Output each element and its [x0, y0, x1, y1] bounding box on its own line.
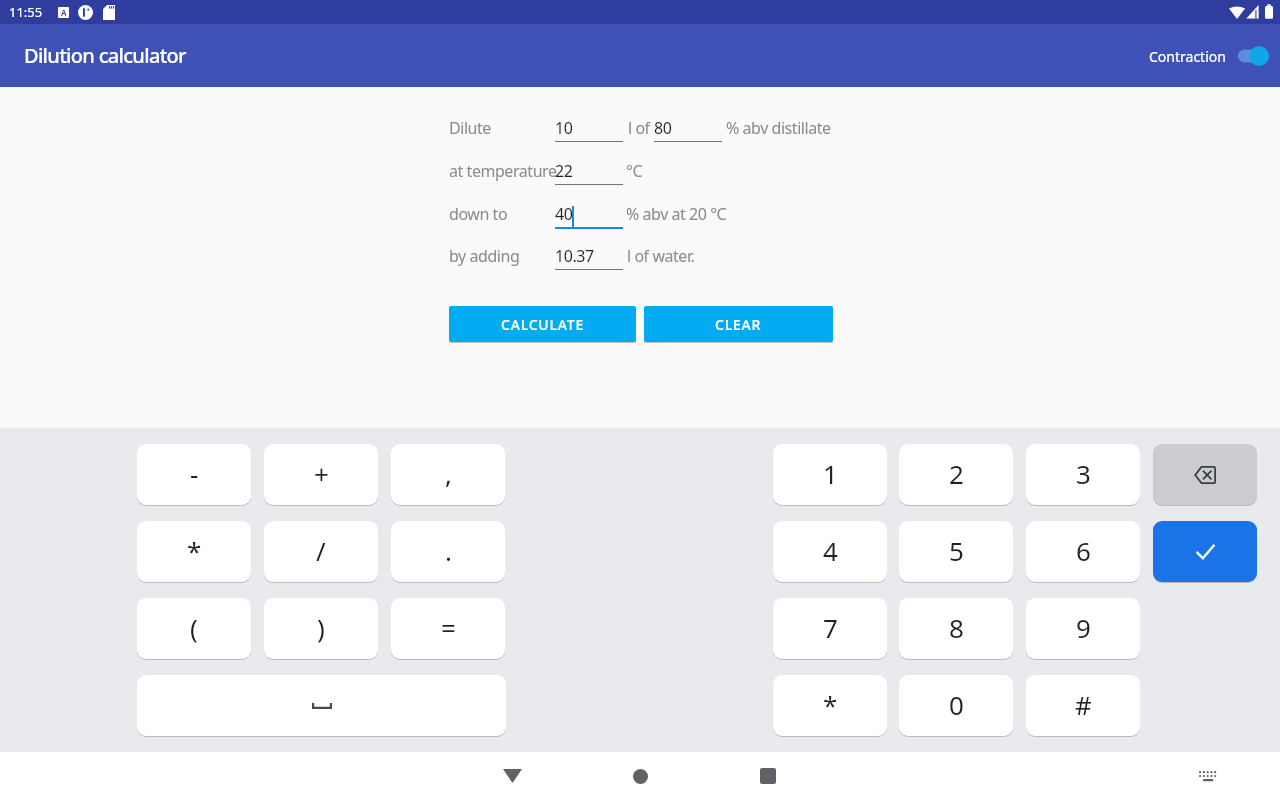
button[interactable]: - [137, 444, 251, 505]
button[interactable]: = [391, 598, 505, 659]
staticText: by adding [449, 245, 520, 267]
staticText: % abv at 20 °C [626, 203, 727, 225]
button[interactable]: Space [137, 675, 506, 736]
button[interactable] [654, 115, 722, 145]
button[interactable]: 6 [1026, 521, 1140, 582]
staticText: down to [449, 203, 508, 225]
staticText: °C [626, 160, 643, 182]
button[interactable]: # [1026, 675, 1140, 736]
staticText: 2 [949, 456, 964, 491]
button[interactable]: 2 [899, 444, 1013, 505]
button[interactable]: 8 [899, 598, 1013, 659]
staticText: % abv distillate [726, 117, 831, 139]
button[interactable] [555, 115, 623, 145]
button[interactable]: + [264, 444, 378, 505]
staticText: = [441, 610, 456, 645]
staticText: 9 [1076, 610, 1091, 645]
button[interactable]: 4 [773, 521, 887, 582]
button[interactable]: * [137, 521, 251, 582]
staticText: * [823, 687, 838, 722]
staticText: / [316, 533, 326, 568]
staticText: , [445, 456, 452, 491]
staticText: # [1075, 687, 1092, 722]
button[interactable]: 5 [899, 521, 1013, 582]
button[interactable]: Home [616, 752, 664, 800]
staticText: 11:55 [9, 3, 43, 21]
button[interactable]: , [391, 444, 505, 505]
staticText: 80 [654, 117, 672, 139]
staticText: at temperature [449, 160, 557, 182]
staticText: l of water. [627, 245, 695, 267]
staticText: 5 [949, 533, 964, 568]
button[interactable]: * [773, 675, 887, 736]
button[interactable]: Enter [1153, 521, 1257, 582]
staticText: 6 [1076, 533, 1091, 568]
staticText: 0 [949, 687, 964, 722]
staticText: Dilution calculator [24, 42, 186, 69]
staticText: Dilute [449, 117, 491, 139]
button[interactable]: 1 [773, 444, 887, 505]
staticText: + [314, 456, 329, 491]
button[interactable] [555, 201, 623, 231]
staticText: l of [628, 117, 650, 139]
button[interactable]: / [264, 521, 378, 582]
staticText: 4 [823, 533, 838, 568]
button[interactable]: ) [264, 598, 378, 659]
button[interactable]: . [391, 521, 505, 582]
staticText: . [445, 533, 452, 568]
staticText: 22 [555, 160, 573, 182]
button[interactable]: Backspace [1153, 444, 1257, 505]
button[interactable]: ( [137, 598, 251, 659]
button[interactable]: 9 [1026, 598, 1140, 659]
staticText: - [190, 456, 199, 491]
button[interactable]: CLEAR [644, 306, 833, 342]
button[interactable]: Recent apps [744, 752, 792, 800]
button[interactable] [555, 243, 623, 273]
staticText: ( [190, 610, 198, 645]
staticText: 40 [555, 203, 573, 225]
staticText: 7 [823, 610, 838, 645]
button[interactable]: 3 [1026, 444, 1140, 505]
button[interactable]: 0 [899, 675, 1013, 736]
button[interactable]: Back [488, 752, 536, 800]
staticText: 10.37 [555, 245, 594, 267]
button[interactable]: 7 [773, 598, 887, 659]
staticText: 10 [555, 117, 573, 139]
staticText: CLEAR [715, 315, 762, 334]
button[interactable]: CALCULATE [449, 306, 636, 342]
button[interactable]: Switch keyboard [1184, 752, 1232, 800]
staticText: ) [317, 610, 325, 645]
staticText: 3 [1076, 456, 1091, 491]
staticText: 8 [949, 610, 964, 645]
button[interactable] [555, 158, 623, 188]
button[interactable]: Contraction [1141, 37, 1280, 75]
staticText: * [187, 533, 202, 568]
staticText: Contraction [1149, 47, 1226, 66]
staticText: CALCULATE [501, 315, 585, 334]
staticText: A [61, 7, 67, 18]
staticText: 1 [823, 456, 838, 491]
